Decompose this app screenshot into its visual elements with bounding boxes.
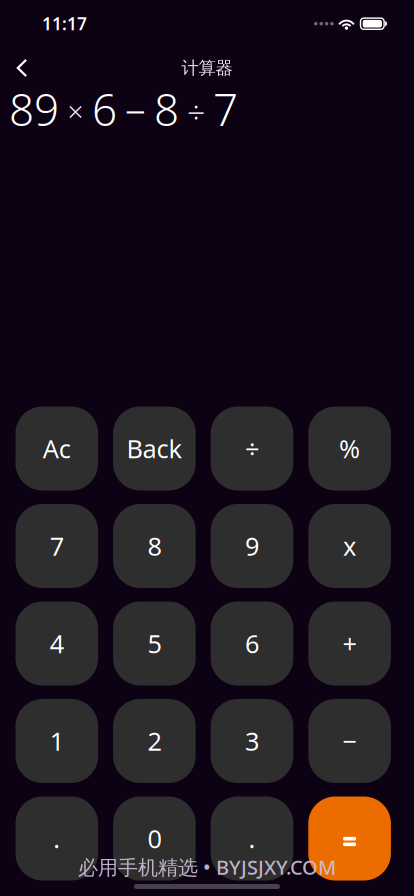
staticText: x <box>343 529 356 563</box>
staticText: ÷ <box>245 432 259 465</box>
staticText: 5 <box>147 627 161 660</box>
staticText: . <box>53 822 60 855</box>
staticText: 计算器 <box>181 57 232 79</box>
button[interactable]: 1 <box>15 699 98 783</box>
button[interactable]: + <box>308 601 391 685</box>
staticText: − <box>343 724 357 758</box>
button[interactable]: 5 <box>113 601 196 685</box>
button[interactable]: Equals <box>308 796 391 880</box>
button[interactable]: 8 <box>113 504 196 588</box>
staticText: 89 <box>9 80 59 138</box>
staticText: 6 <box>92 80 117 138</box>
staticText: % <box>339 432 360 465</box>
button[interactable]: Ac <box>15 406 98 490</box>
staticText: 6 <box>245 627 259 660</box>
staticText: 9 <box>245 529 259 563</box>
button[interactable]: Back <box>4 50 40 86</box>
button[interactable]: 0 <box>113 796 196 880</box>
staticText: 7 <box>50 529 64 563</box>
button[interactable]: − <box>308 699 391 783</box>
staticText: Ac <box>43 432 71 465</box>
button[interactable]: 6 <box>211 601 293 685</box>
button[interactable]: ÷ <box>211 406 293 490</box>
button[interactable]: . <box>211 796 293 880</box>
staticText: 0 <box>147 822 161 855</box>
staticText: 必用手机精选 • BYJSJXY.COM <box>78 854 336 880</box>
staticText: . <box>248 822 255 855</box>
button[interactable]: x <box>308 504 391 588</box>
staticText: ÷ <box>187 90 205 132</box>
button[interactable]: 3 <box>211 699 293 783</box>
staticText: Back <box>126 432 182 465</box>
staticText: 11:17 <box>42 12 87 35</box>
button[interactable]: 7 <box>15 504 98 588</box>
staticText: + <box>343 627 357 660</box>
staticText: – <box>125 80 146 135</box>
button[interactable]: 9 <box>211 504 293 588</box>
staticText: 8 <box>154 80 179 138</box>
button[interactable]: 4 <box>15 601 98 685</box>
button[interactable]: 2 <box>113 699 196 783</box>
staticText: 3 <box>245 724 259 758</box>
staticText: 7 <box>213 80 238 138</box>
button[interactable]: % <box>308 406 391 490</box>
button[interactable]: Back <box>113 406 196 490</box>
staticText: 1 <box>50 724 64 758</box>
staticText: × <box>67 92 83 130</box>
button[interactable]: . <box>15 796 98 880</box>
staticText: 8 <box>147 529 161 563</box>
staticText: 2 <box>147 724 161 758</box>
staticText: 4 <box>50 627 64 660</box>
